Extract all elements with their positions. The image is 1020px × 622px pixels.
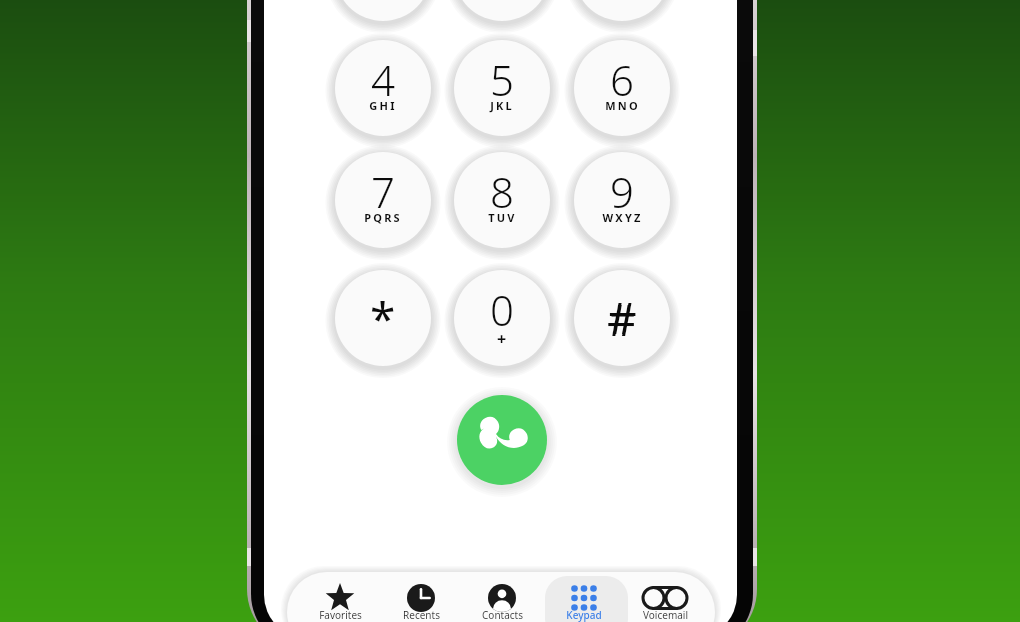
staticText: 6 <box>610 51 634 108</box>
button[interactable]: 7 <box>335 152 431 248</box>
staticText: GHI <box>369 98 397 113</box>
staticText: + <box>497 328 507 350</box>
staticText: Keypad <box>566 608 602 622</box>
button[interactable]: 4 <box>335 40 431 136</box>
button[interactable]: # <box>574 270 670 366</box>
staticText: * <box>370 287 396 350</box>
button[interactable]: * <box>335 270 431 366</box>
button[interactable]: Contacts <box>461 574 543 622</box>
button[interactable]: Voicemail <box>624 574 706 622</box>
staticText: JKL <box>490 98 514 113</box>
staticText: Voicemail <box>643 608 688 622</box>
button[interactable]: 6 <box>574 40 670 136</box>
staticText: 7 <box>371 163 395 220</box>
button[interactable]: Recents <box>380 574 462 622</box>
staticText: 9 <box>610 163 634 220</box>
staticText: 5 <box>490 51 514 108</box>
button[interactable]: Favorites <box>299 574 381 622</box>
staticText: PQRS <box>364 210 402 225</box>
button[interactable]: 8 <box>454 152 550 248</box>
staticText: 0 <box>490 281 514 338</box>
button[interactable]: 0 <box>454 270 550 366</box>
staticText: 8 <box>490 163 514 220</box>
staticText: WXYZ <box>602 210 643 225</box>
staticText: Favorites <box>319 608 362 622</box>
button[interactable]: 3 <box>574 0 670 21</box>
button[interactable]: Keypad <box>543 574 625 622</box>
staticText: Recents <box>403 608 440 622</box>
button[interactable]: 9 <box>574 152 670 248</box>
button[interactable]: 2 <box>454 0 550 21</box>
staticText: # <box>607 287 637 350</box>
button[interactable]: 1 <box>335 0 431 21</box>
staticText: MNO <box>605 98 640 113</box>
staticText: # <box>609 291 635 345</box>
staticText: 4 <box>371 51 395 108</box>
staticText: TUV <box>488 210 517 225</box>
button[interactable]: 5 <box>454 40 550 136</box>
staticText: Contacts <box>482 608 523 622</box>
button[interactable]: Call <box>457 395 547 485</box>
